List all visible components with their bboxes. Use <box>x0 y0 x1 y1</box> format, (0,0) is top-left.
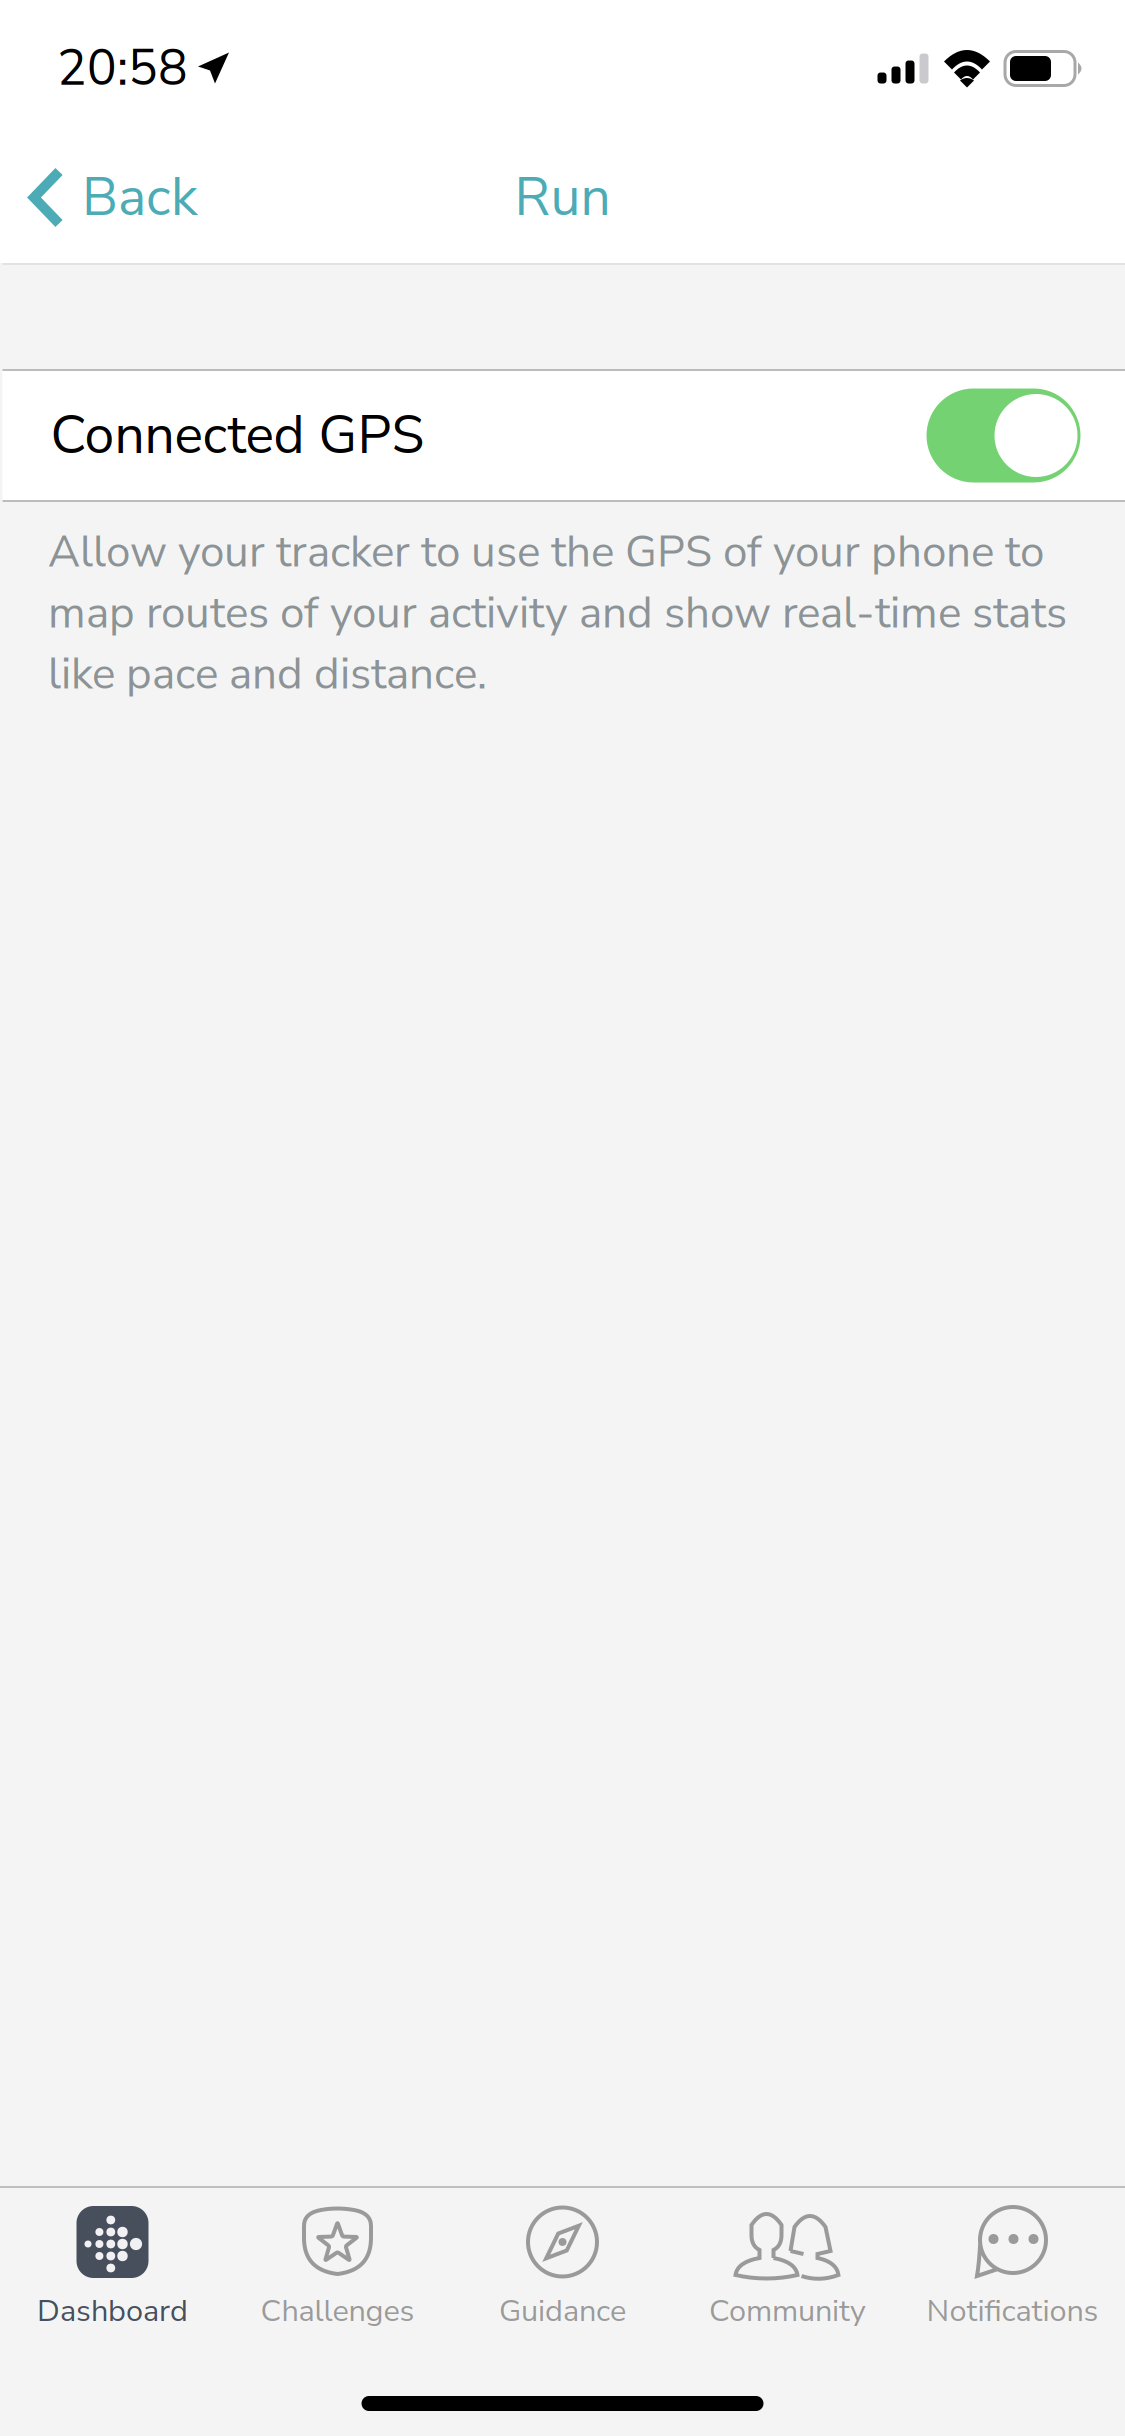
button[interactable]: Notifications <box>900 2188 1125 2340</box>
staticText: Dashboard <box>37 2290 188 2332</box>
staticText: Run <box>514 161 610 234</box>
button[interactable]: Connected GPS <box>2 371 1125 500</box>
staticText: Notifications <box>926 2290 1098 2332</box>
staticText: Back <box>82 161 198 234</box>
staticText: 20:58 <box>57 35 188 102</box>
staticText: Challenges <box>260 2290 414 2332</box>
button[interactable]: Challenges <box>225 2188 450 2340</box>
staticText: Connected GPS <box>50 399 424 472</box>
staticText: Community <box>709 2290 866 2332</box>
button[interactable]: Dashboard <box>0 2188 225 2340</box>
staticText: Guidance <box>499 2290 626 2332</box>
staticText: Allow your tracker to use the GPS of you… <box>48 522 1067 704</box>
button[interactable]: Back <box>0 132 224 263</box>
button[interactable]: Community <box>675 2188 900 2340</box>
button[interactable]: Guidance <box>450 2188 675 2340</box>
